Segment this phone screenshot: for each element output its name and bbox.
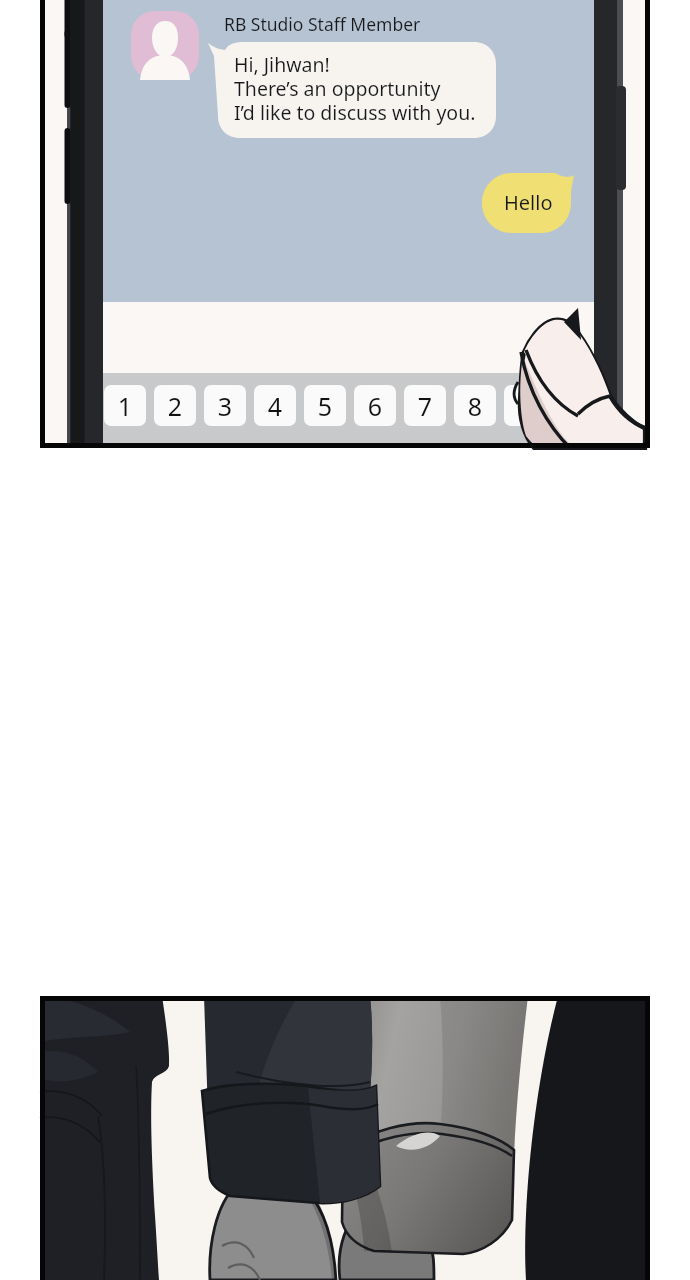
- staticText: 9: [504, 389, 546, 423]
- staticText: 4: [254, 389, 296, 423]
- staticText: RB Studio Staff Member: [224, 12, 421, 36]
- staticText: 1: [104, 389, 146, 423]
- button[interactable]: Comic panel: two people holding hands: [40, 996, 650, 1280]
- staticText: 3: [204, 389, 246, 423]
- staticText: 2: [154, 389, 196, 423]
- staticText: 6: [354, 389, 396, 423]
- staticText: 7: [404, 389, 446, 423]
- staticText: Hello: [504, 189, 553, 216]
- staticText: 8: [454, 389, 496, 423]
- staticText: 5: [304, 389, 346, 423]
- button[interactable]: Comic panel: phone chat screen: [40, 0, 650, 448]
- staticText: Hi, Jihwan! There’s an opportunity I’d l…: [234, 51, 476, 126]
